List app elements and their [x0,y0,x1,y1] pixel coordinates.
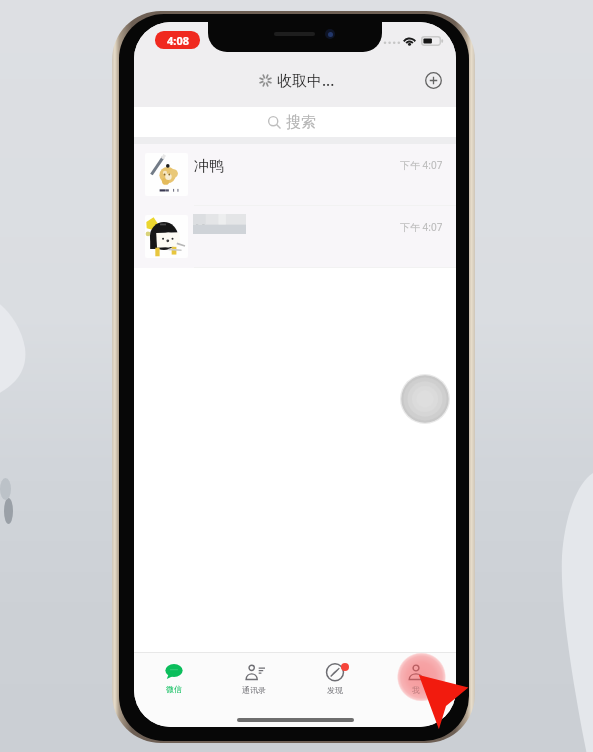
button[interactable]: 我 [375,653,456,701]
button[interactable]: 微信 [134,653,214,701]
button[interactable]: 冲鸭 [134,144,456,206]
staticText: 冲鸭 [194,157,224,176]
button[interactable]: AssistiveTouch [400,374,450,424]
staticText: 我 [412,685,420,695]
staticText: 通讯录 [242,685,266,695]
button[interactable]: 林 [134,206,456,268]
staticText: 搜索 [286,113,316,132]
staticText: 发现 [327,685,343,695]
button[interactable]: 发现 [294,653,375,701]
staticText: 4:08 [167,33,189,48]
staticText: 收取中... [277,70,335,90]
staticText: 微信 [166,684,182,694]
button[interactable]: 搜索 [134,107,456,138]
staticText: 下午 4:07 [400,158,443,172]
button[interactable]: 通讯录 [214,653,294,701]
staticText: 林 [193,217,208,236]
staticText: 下午 4:07 [400,220,443,234]
button[interactable]: Add [418,68,448,92]
